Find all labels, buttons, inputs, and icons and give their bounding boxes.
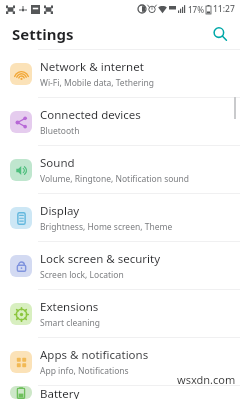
staticText: Connected devices [40, 107, 141, 123]
staticText: App info, Notifications [40, 365, 129, 377]
staticText: wsxdn.com [177, 372, 236, 387]
staticText: 11:27 [213, 3, 235, 15]
staticText: Screen lock, Location [40, 269, 124, 281]
button[interactable]: Extensions [0, 290, 240, 337]
button[interactable]: Sound [0, 146, 240, 193]
staticText: Settings [12, 24, 74, 44]
staticText: Brightness, Home screen, Theme [40, 221, 173, 233]
staticText: Battery [40, 386, 80, 399]
staticText: 17% [188, 4, 204, 15]
staticText: Apps & notifications [40, 347, 149, 363]
button[interactable]: Network & internet [0, 50, 240, 97]
staticText: Display [40, 203, 80, 219]
staticText: Bluetooth [40, 125, 80, 137]
staticText: Extensions [40, 299, 99, 315]
staticText: Smart cleaning [40, 317, 100, 329]
button[interactable]: Battery [0, 386, 240, 399]
button[interactable]: Connected devices [0, 98, 240, 145]
staticText: Lock screen & security [40, 251, 161, 267]
staticText: Network & internet [40, 59, 144, 75]
staticText: Sound [40, 155, 75, 171]
button[interactable]: Lock screen & security [0, 242, 240, 289]
button[interactable]: Search [208, 22, 232, 46]
staticText: Volume, Ringtone, Notification sound [40, 173, 190, 185]
button[interactable]: Apps & notifications [0, 338, 240, 385]
button[interactable]: Display [0, 194, 240, 241]
staticText: Wi-Fi, Mobile data, Tethering [40, 77, 154, 89]
